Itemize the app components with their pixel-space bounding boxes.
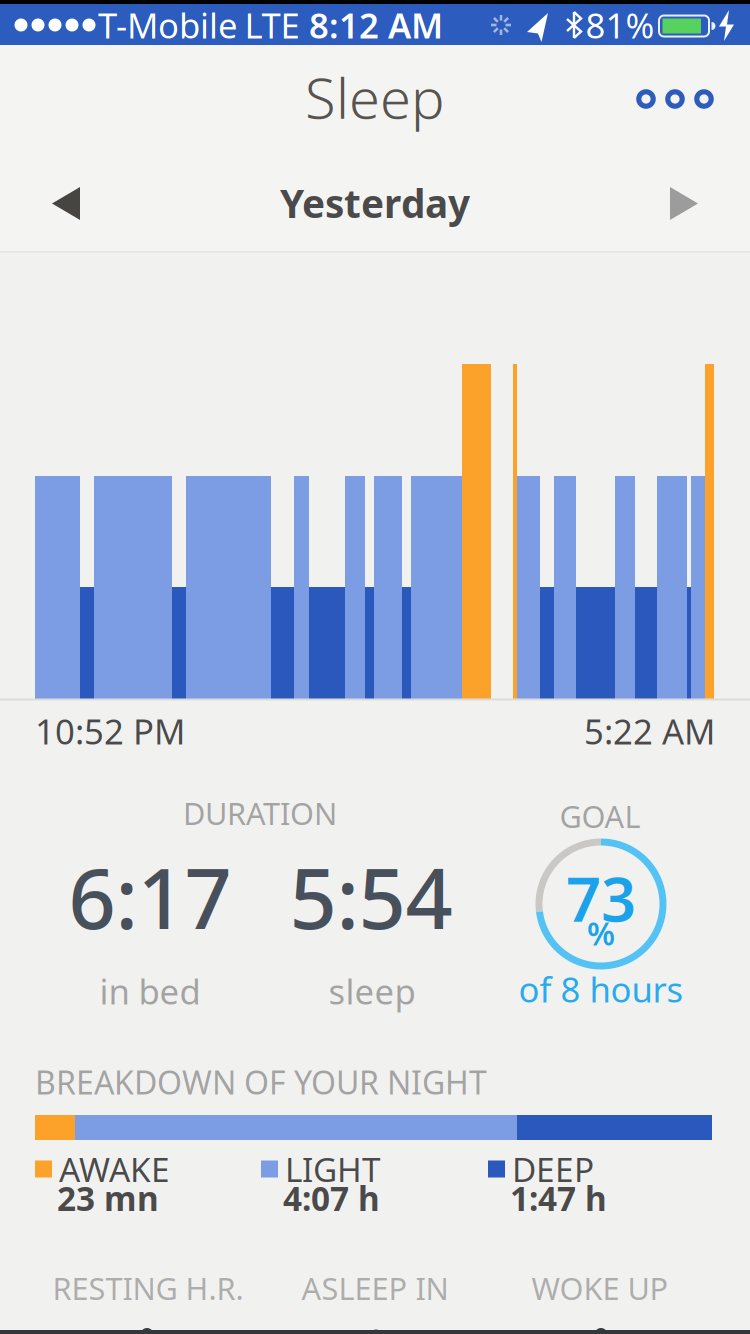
staticText: 5:22 AM [584, 708, 715, 754]
staticText: % [587, 912, 615, 954]
staticText: GOAL [559, 796, 640, 836]
button[interactable]: Previous day [36, 173, 96, 233]
staticText: 73 [566, 857, 636, 939]
staticText: 10:52 PM [35, 708, 185, 754]
staticText: in bed [99, 968, 200, 1014]
staticText: RESTING H.R. [52, 1268, 243, 1308]
staticText: sleep [328, 968, 415, 1014]
staticText: LIGHT [285, 1147, 381, 1191]
staticText: AWAKE [59, 1147, 170, 1191]
staticText: DURATION [183, 793, 337, 833]
staticText: 8:12 AM [309, 2, 443, 48]
staticText: 4:07 h [283, 1176, 380, 1220]
staticText: 5:54 [289, 842, 452, 952]
staticText: 6:17 [68, 842, 231, 952]
staticText: 81% [585, 2, 654, 48]
staticText: of 8 hours [518, 966, 683, 1012]
button[interactable]: Next day [654, 173, 714, 233]
staticText: WOKE UP [531, 1268, 668, 1308]
staticText: 23 mn [57, 1176, 159, 1220]
staticText: BREAKDOWN OF YOUR NIGHT [35, 1061, 487, 1103]
staticText: Sleep [305, 60, 445, 134]
button[interactable]: More options [628, 77, 722, 121]
staticText: ASLEEP IN [301, 1268, 448, 1308]
staticText: LTE [244, 2, 299, 48]
staticText: 1:47 h [510, 1176, 607, 1220]
staticText: T-Mobile [98, 2, 238, 48]
staticText: DEEP [512, 1147, 594, 1191]
staticText: Yesterday [280, 177, 470, 229]
